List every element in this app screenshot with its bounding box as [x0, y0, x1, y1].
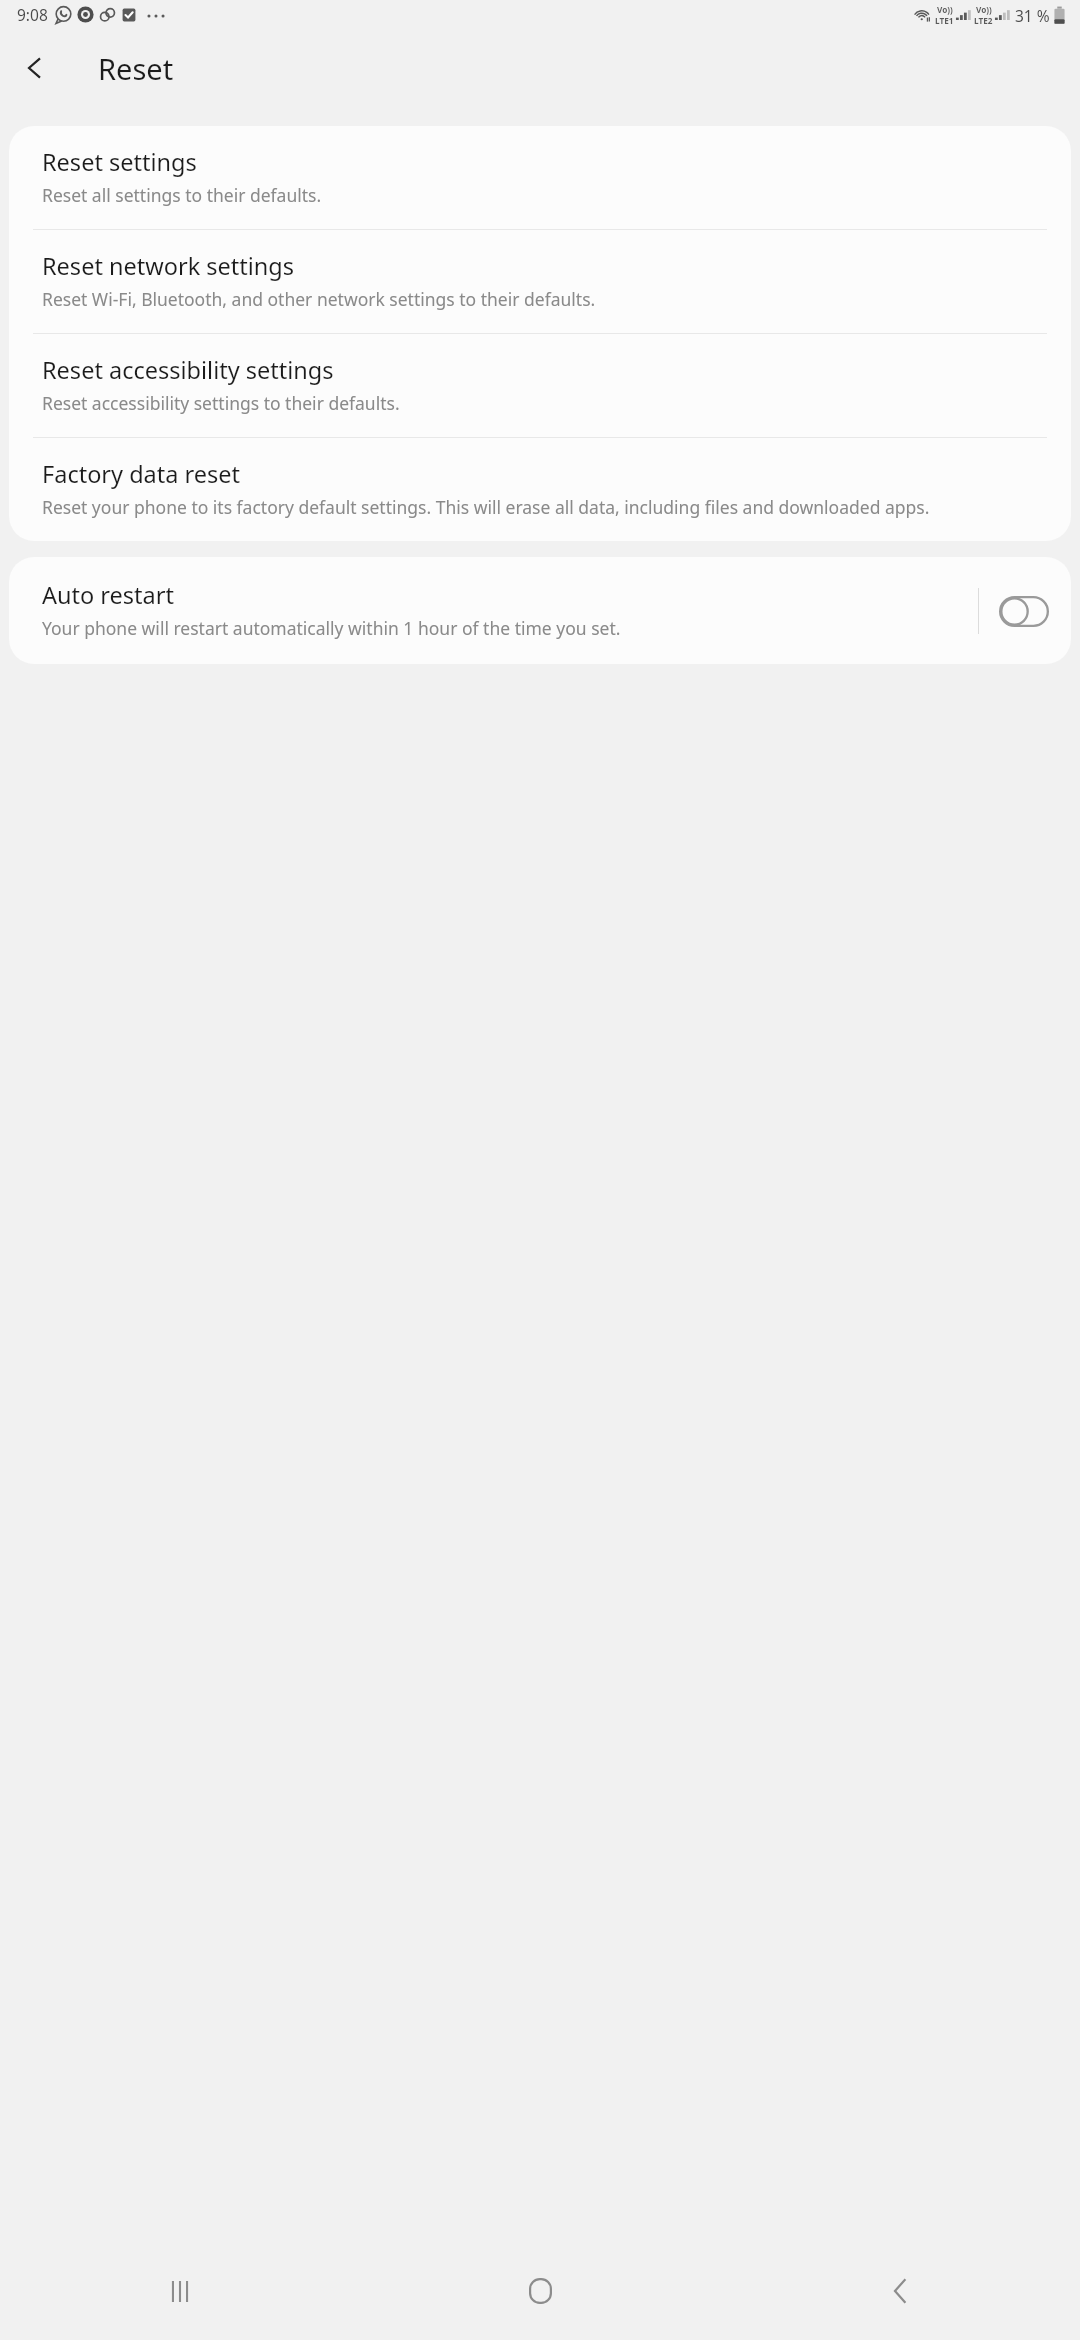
staticText: 9:08	[17, 4, 48, 25]
staticText: Vo))	[937, 4, 953, 15]
staticText: Reset your phone to its factory default …	[42, 495, 930, 519]
staticText: Reset accessibility settings	[42, 354, 334, 386]
staticText: Reset all settings to their defaults.	[42, 183, 322, 207]
staticText: Reset settings	[42, 146, 197, 178]
staticText: Your phone will restart automatically wi…	[42, 616, 621, 640]
staticText: Reset Wi-Fi, Bluetooth, and other networ…	[42, 287, 596, 311]
button[interactable]: Reset settings	[9, 126, 1071, 229]
staticText: Reset network settings	[42, 250, 295, 282]
staticText: Factory data reset	[42, 458, 241, 490]
staticText: 31 %	[1015, 5, 1050, 26]
button[interactable]: Auto restart toggle	[993, 586, 1055, 636]
button[interactable]: Factory data reset	[9, 438, 1071, 541]
button[interactable]: Back	[7, 40, 63, 96]
button[interactable]: Back	[863, 2254, 937, 2328]
staticText: Reset	[98, 49, 174, 88]
staticText: LTE1	[935, 15, 954, 26]
staticText: Auto restart	[42, 579, 174, 611]
staticText: Vo))	[976, 4, 992, 15]
staticText: LTE2	[974, 15, 993, 26]
button[interactable]: Reset network settings	[9, 230, 1071, 333]
staticText: Reset accessibility settings to their de…	[42, 391, 400, 415]
button[interactable]: Recent apps	[143, 2254, 217, 2328]
button[interactable]: Auto restart	[9, 557, 978, 664]
button[interactable]: Home	[503, 2254, 577, 2328]
button[interactable]: Reset accessibility settings	[9, 334, 1071, 437]
